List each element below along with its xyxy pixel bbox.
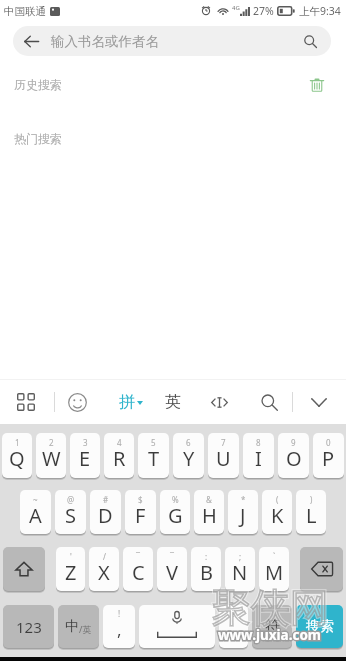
button[interactable]: !: [103, 605, 135, 648]
staticText: B: [200, 559, 213, 586]
staticText: T: [148, 445, 160, 472]
button[interactable]: ¯: [157, 547, 187, 591]
staticText: 4G: [232, 4, 240, 12]
staticText: Y: [183, 445, 195, 472]
button[interactable]: Backspace: [300, 547, 343, 591]
staticText: 2: [49, 437, 54, 448]
button[interactable]: 6: [173, 433, 204, 478]
staticText: 符: [265, 617, 280, 636]
staticText: ;: [239, 551, 242, 562]
button[interactable]: ;: [225, 547, 255, 591]
staticText: G: [168, 502, 183, 529]
staticText: 7: [221, 437, 226, 448]
button[interactable]: #: [90, 490, 121, 534]
button[interactable]: Keyboard layouts: [8, 384, 44, 420]
button[interactable]: (: [262, 490, 292, 534]
button[interactable]: ~: [20, 490, 51, 534]
staticText: P: [322, 445, 335, 472]
button[interactable]: %: [160, 490, 190, 534]
staticText: Q: [9, 445, 25, 472]
button[interactable]: 5: [138, 433, 169, 478]
staticText: www.juxia.com: [218, 626, 322, 644]
staticText: /: [103, 551, 106, 562]
staticText: L: [306, 502, 317, 529]
button[interactable]: Back: [13, 26, 331, 56]
staticText: ~: [33, 494, 38, 505]
button[interactable]: 搜索: [296, 605, 343, 648]
staticText: C: [132, 559, 145, 586]
button[interactable]: `: [259, 547, 289, 591]
staticText: H: [202, 502, 217, 529]
staticText: 拼: [119, 392, 135, 412]
button[interactable]: Hide keyboard: [301, 384, 337, 420]
staticText: X: [98, 559, 110, 586]
staticText: F: [135, 502, 146, 529]
staticText: /英: [79, 623, 92, 635]
button[interactable]: 英: [155, 384, 191, 420]
button[interactable]: 3: [70, 433, 100, 478]
button[interactable]: ¯: [123, 547, 153, 591]
staticText: 4: [117, 437, 122, 448]
button[interactable]: $: [125, 490, 156, 534]
staticText: 输入书名或作者名: [51, 33, 159, 50]
button[interactable]: Emoji: [59, 384, 95, 420]
button[interactable]: @: [55, 490, 86, 534]
button[interactable]: Clear history: [306, 76, 328, 92]
staticText: 中: [65, 618, 79, 636]
staticText: 中国联通: [4, 5, 46, 18]
button[interactable]: /: [89, 547, 119, 591]
button[interactable]: ?: [219, 605, 248, 648]
button[interactable]: 123: [3, 605, 54, 648]
button[interactable]: Search: [251, 384, 287, 420]
button[interactable]: 7: [208, 433, 239, 478]
staticText: &: [206, 494, 212, 505]
button[interactable]: 2: [36, 433, 66, 478]
staticText: 123: [16, 617, 42, 637]
staticText: 热门搜索: [14, 131, 62, 146]
button[interactable]: ': [56, 547, 85, 591]
staticText: :: [205, 551, 208, 562]
staticText: ¯: [170, 551, 174, 562]
staticText: www.juxia.com: [218, 626, 322, 644]
staticText: K: [271, 502, 284, 529]
staticText: S: [65, 502, 76, 529]
button[interactable]: Space: [139, 605, 215, 648]
staticText: !: [118, 608, 121, 619]
button[interactable]: 0: [313, 433, 344, 478]
staticText: N: [232, 559, 248, 586]
button[interactable]: ): [296, 490, 326, 534]
button[interactable]: *: [228, 490, 258, 534]
staticText: *: [241, 494, 246, 505]
staticText: ,: [117, 618, 122, 641]
staticText: 9: [291, 437, 296, 448]
staticText: I: [255, 445, 262, 472]
staticText: ': [70, 551, 72, 562]
button[interactable]: Shift: [3, 547, 45, 591]
staticText: U: [216, 445, 231, 472]
button[interactable]: Move cursor: [201, 384, 237, 420]
staticText: D: [98, 502, 113, 529]
staticText: 。: [227, 621, 241, 639]
button[interactable]: 9: [278, 433, 309, 478]
button[interactable]: :: [191, 547, 221, 591]
button[interactable]: 符: [252, 605, 292, 648]
staticText: J: [240, 502, 246, 529]
staticText: E: [79, 445, 91, 472]
button[interactable]: 拼: [112, 384, 150, 420]
staticText: %: [172, 494, 179, 505]
staticText: 搜索: [306, 618, 334, 636]
button[interactable]: &: [194, 490, 224, 534]
button[interactable]: 1: [2, 433, 32, 478]
staticText: ): [310, 494, 313, 505]
staticText: R: [113, 445, 126, 472]
staticText: Z: [65, 559, 77, 586]
staticText: W: [42, 445, 61, 472]
button[interactable]: 中: [58, 605, 99, 648]
staticText: 0: [326, 437, 331, 448]
button[interactable]: 4: [104, 433, 134, 478]
staticText: 聚侠网: [212, 583, 329, 632]
button[interactable]: 8: [243, 433, 274, 478]
staticText: ¯: [136, 551, 140, 562]
other: Back: [13, 26, 49, 56]
staticText: 历史搜索: [14, 77, 62, 92]
